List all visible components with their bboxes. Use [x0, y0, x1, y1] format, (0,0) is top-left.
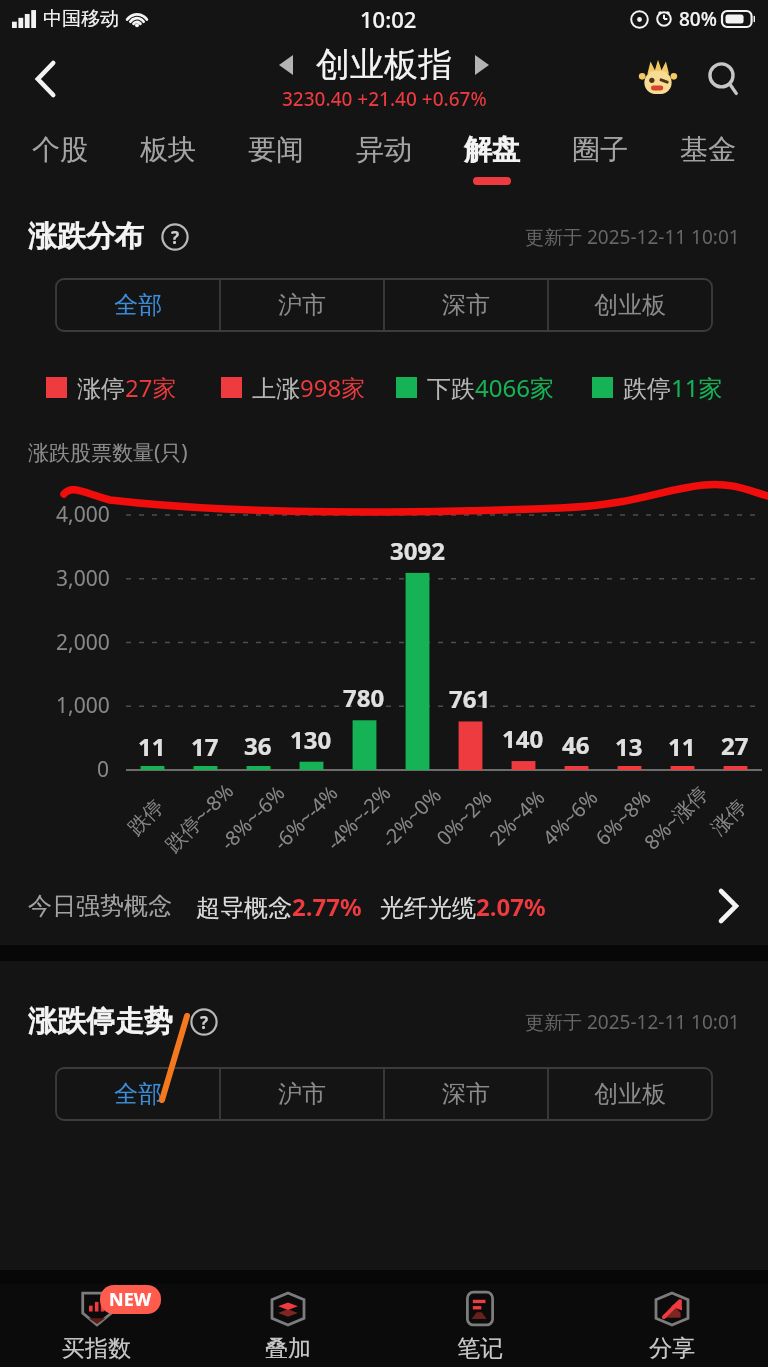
- button[interactable]: Notes: [384, 1284, 576, 1367]
- staticText: NEW: [109, 1287, 152, 1312]
- button[interactable]: 全部: [56, 279, 220, 331]
- staticText: 涨跌股票数量(只): [28, 438, 188, 467]
- button[interactable]: 深市: [384, 1068, 548, 1120]
- staticText: 780: [343, 681, 385, 714]
- staticText: -2%~0%: [375, 782, 447, 853]
- staticText: 涨停: [706, 794, 752, 840]
- staticText: 沪市: [278, 1079, 326, 1109]
- staticText: 创业板: [594, 290, 666, 320]
- staticText: 761: [449, 682, 491, 715]
- staticText: 2%~4%: [483, 784, 551, 851]
- staticText: 13: [615, 730, 643, 763]
- staticText: 创业板: [594, 1079, 666, 1109]
- staticText: 跌停~-8%: [159, 777, 239, 857]
- staticText: 叠加: [265, 1334, 311, 1363]
- staticText: -6%~-4%: [267, 779, 344, 856]
- staticText: -4%~-2%: [320, 779, 397, 856]
- staticText: 36: [244, 729, 272, 762]
- staticText: 板块: [140, 132, 196, 167]
- staticText: 全部: [114, 1079, 162, 1109]
- other: Overlay: [277, 1298, 299, 1320]
- staticText: 深市: [442, 290, 490, 320]
- button[interactable]: Next index: [464, 47, 500, 83]
- staticText: ?: [171, 226, 180, 249]
- button[interactable]: 创业板: [548, 1068, 712, 1120]
- staticText: 4,000: [56, 500, 110, 529]
- staticText: 涨跌停走势: [28, 1003, 173, 1040]
- staticText: 4%~6%: [536, 784, 604, 851]
- staticText: 全部: [114, 290, 162, 320]
- button[interactable]: Profile avatar: [632, 53, 684, 105]
- staticText: 异动: [356, 132, 412, 167]
- button[interactable]: 圈子: [546, 120, 654, 196]
- staticText: 10:02: [360, 4, 417, 34]
- staticText: 130: [290, 723, 332, 756]
- button[interactable]: 异动: [330, 120, 438, 196]
- button[interactable]: Previous index: [268, 47, 304, 83]
- staticText: 2,000: [56, 628, 110, 657]
- staticText: 笔记: [457, 1334, 503, 1363]
- staticText: 中国移动: [43, 7, 119, 31]
- staticText: 个股: [32, 132, 88, 167]
- staticText: 创业板指: [316, 43, 452, 86]
- staticText: 超导概念2.77%: [196, 890, 362, 923]
- button[interactable]: 基金: [654, 120, 762, 196]
- staticText: 分享: [649, 1334, 695, 1363]
- staticText: 更新于 2025-12-11 10:01: [525, 224, 740, 250]
- staticText: 3092: [390, 534, 445, 567]
- button[interactable]: 板块: [114, 120, 222, 196]
- staticText: 6%~8%: [589, 784, 657, 851]
- button[interactable]: 沪市: [220, 279, 384, 331]
- staticText: 17: [191, 730, 219, 763]
- other: Notes: [459, 1288, 501, 1330]
- staticText: 下跌4066家: [427, 371, 554, 404]
- staticText: 8%~涨停: [638, 780, 714, 855]
- staticText: 基金: [680, 132, 736, 167]
- button[interactable]: 解盘: [438, 120, 546, 196]
- staticText: 1,000: [56, 691, 110, 720]
- staticText: 圈子: [572, 132, 628, 167]
- staticText: 跌停11家: [623, 371, 723, 404]
- button[interactable]: 今日强势概念: [28, 867, 740, 945]
- button[interactable]: 沪市: [220, 1068, 384, 1120]
- staticText: -8%~-6%: [214, 779, 291, 856]
- other: Share: [660, 1297, 684, 1321]
- staticText: 光纤光缆2.07%: [380, 890, 546, 923]
- staticText: 0%~2%: [430, 784, 498, 851]
- staticText: 买指数: [62, 1334, 131, 1363]
- staticText: 跌停: [123, 794, 169, 840]
- staticText: 涨跌分布: [28, 218, 144, 255]
- staticText: 80%: [679, 6, 717, 32]
- staticText: 3,000: [56, 564, 110, 593]
- button[interactable]: 创业板: [548, 279, 712, 331]
- staticText: 解盘: [464, 132, 520, 167]
- button[interactable]: Help: [158, 220, 192, 254]
- staticText: 深市: [442, 1079, 490, 1109]
- button[interactable]: Share: [576, 1284, 768, 1367]
- button[interactable]: Buy index: [0, 1284, 192, 1367]
- button[interactable]: 要闻: [222, 120, 330, 196]
- button[interactable]: 深市: [384, 279, 548, 331]
- button[interactable]: 个股: [6, 120, 114, 196]
- staticText: 今日强势概念: [28, 891, 172, 921]
- staticText: 11: [668, 730, 696, 763]
- staticText: 46: [562, 728, 590, 761]
- button[interactable]: Back: [20, 53, 72, 105]
- staticText: 27: [721, 729, 749, 762]
- staticText: 140: [502, 722, 544, 755]
- button[interactable]: Overlay: [192, 1284, 384, 1367]
- staticText: 沪市: [278, 290, 326, 320]
- staticText: 更新于 2025-12-11 10:01: [525, 1009, 740, 1035]
- button[interactable]: 全部: [56, 1068, 220, 1120]
- button[interactable]: Search: [698, 53, 750, 105]
- staticText: 涨停27家: [77, 371, 177, 404]
- button[interactable]: Help: [187, 1005, 221, 1039]
- staticText: 3230.40 +21.40 +0.67%: [282, 86, 487, 112]
- staticText: 0: [97, 755, 110, 784]
- staticText: 上涨998家: [252, 371, 366, 404]
- other: Buy index: [76, 1288, 118, 1330]
- staticText: 11: [138, 730, 166, 763]
- staticText: ?: [200, 1011, 209, 1034]
- staticText: 要闻: [248, 132, 304, 167]
